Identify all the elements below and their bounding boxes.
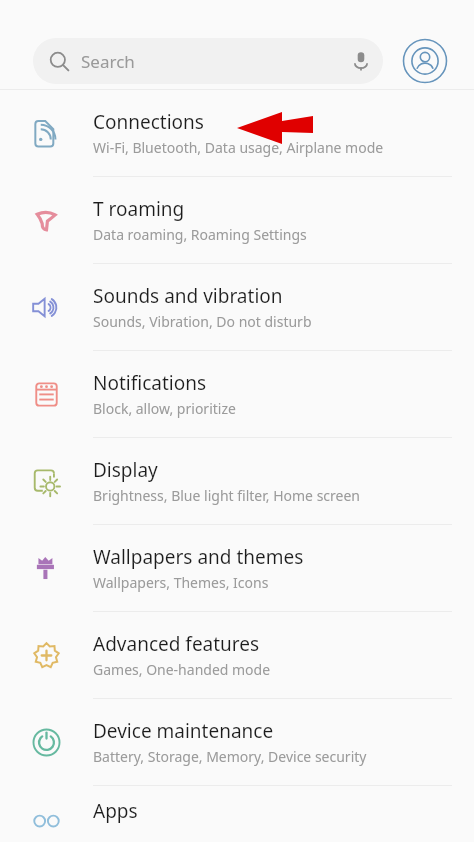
staticText: Data roaming, Roaming Settings xyxy=(93,225,307,244)
staticText: Brightness, Blue light filter, Home scre… xyxy=(93,486,361,505)
staticText: Sounds and vibration xyxy=(93,283,283,309)
button[interactable]: Voice search xyxy=(343,43,379,79)
staticText: Display xyxy=(93,457,158,483)
staticText: Games, One-handed mode xyxy=(93,660,271,679)
staticText: Search xyxy=(81,50,135,73)
button[interactable]: Display xyxy=(0,438,474,524)
button[interactable]: T roaming xyxy=(0,177,474,263)
button[interactable]: Device maintenance xyxy=(0,699,474,785)
button[interactable]: Advanced features xyxy=(0,612,474,698)
staticText: Apps xyxy=(93,798,138,824)
staticText: Notifications xyxy=(93,370,207,396)
staticText: Wallpapers, Themes, Icons xyxy=(93,573,269,592)
staticText: Wallpapers and themes xyxy=(93,544,304,570)
staticText: T roaming xyxy=(93,196,185,222)
staticText: Battery, Storage, Memory, Device securit… xyxy=(93,747,367,766)
staticText: Wi-Fi, Bluetooth, Data usage, Airplane m… xyxy=(93,138,384,157)
staticText: Block, allow, prioritize xyxy=(93,399,236,418)
button[interactable]: Connections xyxy=(0,90,474,176)
button[interactable]: Sounds and vibration xyxy=(0,264,474,350)
button[interactable]: Account xyxy=(402,38,448,84)
button[interactable]: Search xyxy=(33,38,383,84)
staticText: Connections xyxy=(93,109,204,135)
button[interactable]: Notifications xyxy=(0,351,474,437)
staticText: Sounds, Vibration, Do not disturb xyxy=(93,312,312,331)
staticText: Device maintenance xyxy=(93,718,274,744)
button[interactable]: Apps xyxy=(0,786,474,842)
button[interactable]: Wallpapers and themes xyxy=(0,525,474,611)
staticText: Advanced features xyxy=(93,631,260,657)
